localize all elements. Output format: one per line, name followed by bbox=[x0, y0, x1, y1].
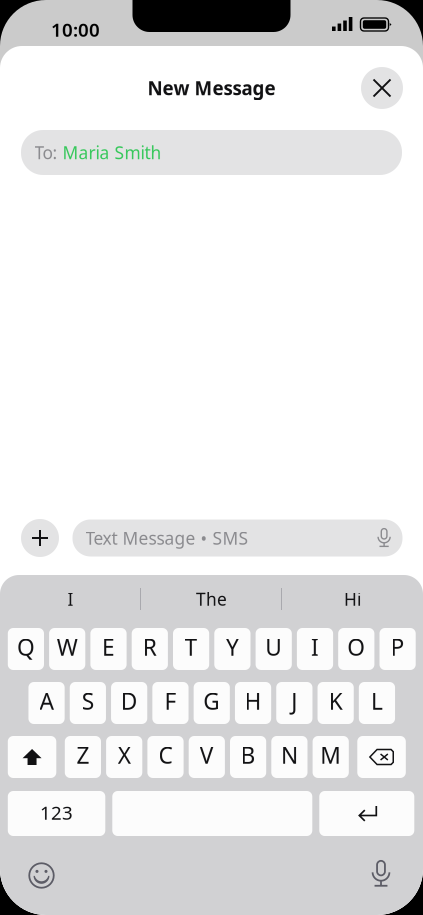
button[interactable]: Hi bbox=[282, 575, 423, 623]
staticText: S bbox=[82, 686, 94, 716]
staticText: Z bbox=[76, 740, 89, 770]
button[interactable]: S bbox=[70, 682, 106, 724]
staticText: Maria Smith bbox=[62, 141, 161, 164]
button[interactable]: 123 bbox=[8, 791, 105, 836]
button[interactable]: J bbox=[276, 682, 312, 724]
button[interactable]: N bbox=[271, 736, 307, 778]
button[interactable]: Emoji bbox=[23, 857, 59, 893]
staticText: Hi bbox=[344, 587, 361, 610]
staticText: V bbox=[200, 740, 214, 770]
button[interactable]: Y bbox=[214, 628, 250, 670]
staticText: Q bbox=[17, 632, 35, 662]
button[interactable]: E bbox=[90, 628, 127, 670]
button[interactable]: Shift bbox=[8, 736, 56, 778]
staticText: G bbox=[203, 686, 220, 716]
button[interactable]: C bbox=[147, 736, 184, 778]
button[interactable]: V bbox=[189, 736, 225, 778]
button[interactable]: M bbox=[313, 736, 349, 778]
button[interactable]: T bbox=[173, 628, 209, 670]
staticText: I bbox=[311, 632, 319, 662]
button[interactable]: A bbox=[28, 682, 65, 724]
button[interactable]: H bbox=[235, 682, 271, 724]
button[interactable]: U bbox=[256, 628, 292, 670]
button[interactable]: Delete bbox=[357, 736, 406, 778]
staticText: E bbox=[102, 632, 115, 662]
button[interactable]: Dictate bbox=[363, 856, 399, 892]
button[interactable]: Q bbox=[8, 628, 44, 670]
button[interactable]: L bbox=[359, 682, 395, 724]
staticText: New Message bbox=[147, 76, 275, 100]
button[interactable]: B bbox=[230, 736, 266, 778]
button[interactable]: R bbox=[132, 628, 168, 670]
staticText: B bbox=[241, 740, 256, 770]
staticText: K bbox=[329, 686, 343, 716]
button[interactable]: Message field bbox=[72, 519, 402, 556]
staticText: J bbox=[291, 686, 297, 716]
staticText: H bbox=[245, 686, 262, 716]
staticText: A bbox=[40, 686, 54, 716]
staticText: The bbox=[196, 587, 227, 610]
staticText: T bbox=[185, 632, 198, 662]
button[interactable]: O bbox=[338, 628, 374, 670]
button[interactable]: K bbox=[318, 682, 354, 724]
button[interactable]: D bbox=[111, 682, 147, 724]
staticText: U bbox=[265, 632, 282, 662]
button[interactable]: The bbox=[141, 575, 282, 623]
button[interactable]: New Message bbox=[0, 73, 423, 103]
staticText: 123 bbox=[40, 800, 73, 825]
staticText: P bbox=[391, 632, 405, 662]
button[interactable]: F bbox=[152, 682, 189, 724]
staticText: M bbox=[320, 740, 341, 770]
button[interactable]: Close bbox=[361, 67, 403, 109]
staticText: N bbox=[281, 740, 298, 770]
button[interactable]: Return bbox=[319, 791, 414, 836]
staticText: O bbox=[347, 632, 365, 662]
staticText: C bbox=[158, 740, 172, 770]
staticText: R bbox=[143, 632, 157, 662]
button[interactable]: G bbox=[194, 682, 230, 724]
staticText: X bbox=[118, 740, 131, 770]
button[interactable]: W bbox=[49, 628, 85, 670]
button[interactable]: X bbox=[106, 736, 142, 778]
staticText: I bbox=[67, 587, 73, 610]
staticText: W bbox=[57, 632, 78, 662]
staticText: Text Message • SMS bbox=[85, 526, 248, 549]
button[interactable]: Z bbox=[65, 736, 101, 778]
button[interactable]: I bbox=[297, 628, 333, 670]
staticText: F bbox=[164, 686, 176, 716]
staticText: D bbox=[121, 686, 138, 716]
button[interactable]: I bbox=[0, 575, 141, 623]
staticText: 10:00 bbox=[51, 17, 100, 42]
staticText: To: bbox=[34, 141, 62, 164]
staticText: L bbox=[371, 686, 383, 716]
staticText: Y bbox=[226, 632, 239, 662]
button[interactable]: Add attachment bbox=[21, 519, 59, 557]
button[interactable]: P bbox=[379, 628, 416, 670]
